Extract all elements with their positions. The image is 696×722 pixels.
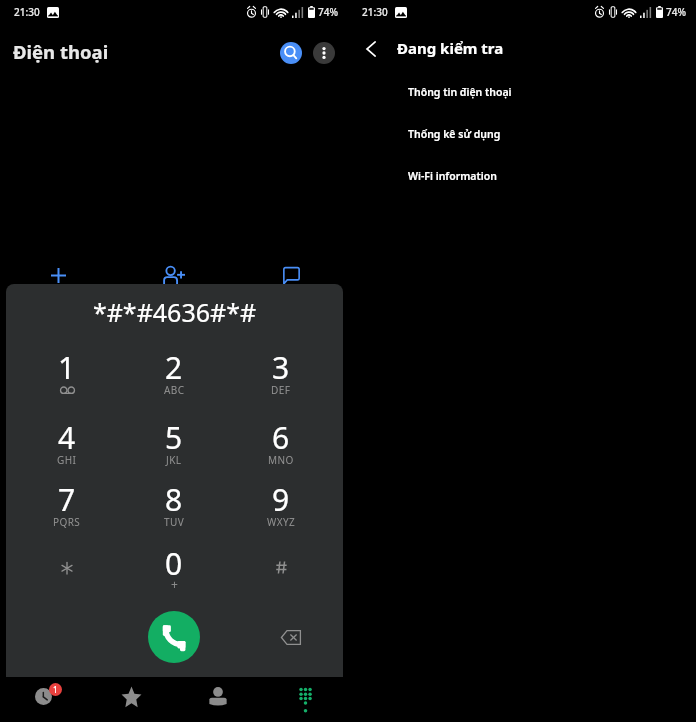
staticText: 4 [58, 417, 76, 458]
button[interactable]: 1 [22, 353, 112, 409]
staticText: + [171, 576, 178, 592]
staticText: Wi-Fi information [408, 169, 497, 183]
staticText: DEF [271, 383, 291, 397]
staticText: 1 [58, 347, 76, 388]
staticText: 21:30 [362, 5, 388, 19]
staticText: PQRS [53, 515, 81, 529]
staticText: 0 [165, 543, 183, 584]
staticText: TUV [164, 515, 185, 529]
staticText: 74% [318, 5, 338, 19]
button[interactable]: Keypad [269, 677, 341, 722]
button[interactable]: 2 [129, 353, 219, 409]
button[interactable]: Recent calls [7, 677, 79, 722]
button[interactable]: Thống kê sử dụng [348, 118, 696, 160]
button[interactable]: 7 [22, 485, 112, 541]
button[interactable]: Contacts [182, 677, 254, 722]
staticText: 2 [165, 347, 183, 388]
button[interactable]: 9 [236, 485, 326, 541]
staticText: Điện thoại [13, 39, 109, 64]
staticText: 5 [165, 417, 183, 458]
staticText: 74% [666, 5, 686, 19]
button[interactable]: Add contact [152, 259, 196, 291]
button[interactable]: Favourites [95, 677, 167, 722]
staticText: GHI [57, 453, 77, 467]
staticText: 9 [272, 479, 290, 520]
staticText: Thông tin điện thoại [408, 85, 512, 99]
staticText: 6 [272, 417, 290, 458]
button[interactable] [236, 549, 326, 605]
button[interactable]: Call [148, 611, 200, 663]
button[interactable]: Backspace [269, 615, 313, 659]
staticText: ABC [164, 383, 185, 397]
staticText: MNO [268, 453, 294, 467]
staticText: JKL [166, 453, 182, 467]
button[interactable]: Wi-Fi information [348, 160, 696, 202]
staticText: *#*#4636#*# [6, 295, 343, 329]
button[interactable]: Search [280, 42, 302, 64]
staticText: Thống kê sử dụng [408, 127, 501, 141]
button[interactable]: Thông tin điện thoại [348, 76, 696, 118]
staticText: 3 [272, 347, 290, 388]
button[interactable]: Add number [36, 259, 80, 291]
staticText: 21:30 [14, 5, 40, 19]
staticText: Đang kiểm tra [397, 38, 504, 58]
button[interactable]: 5 [129, 423, 219, 479]
button[interactable]: 0 [129, 549, 219, 605]
button[interactable]: Send message [269, 259, 313, 291]
button[interactable]: More options [313, 42, 335, 64]
button[interactable]: 3 [236, 353, 326, 409]
button[interactable]: 6 [236, 423, 326, 479]
staticText: 8 [165, 479, 183, 520]
button[interactable]: 8 [129, 485, 219, 541]
staticText: 7 [58, 479, 76, 520]
staticText: WXYZ [267, 515, 296, 529]
button[interactable]: 4 [22, 423, 112, 479]
button[interactable]: Back [352, 30, 389, 67]
staticText: 1 [53, 684, 58, 695]
button[interactable] [22, 549, 112, 605]
